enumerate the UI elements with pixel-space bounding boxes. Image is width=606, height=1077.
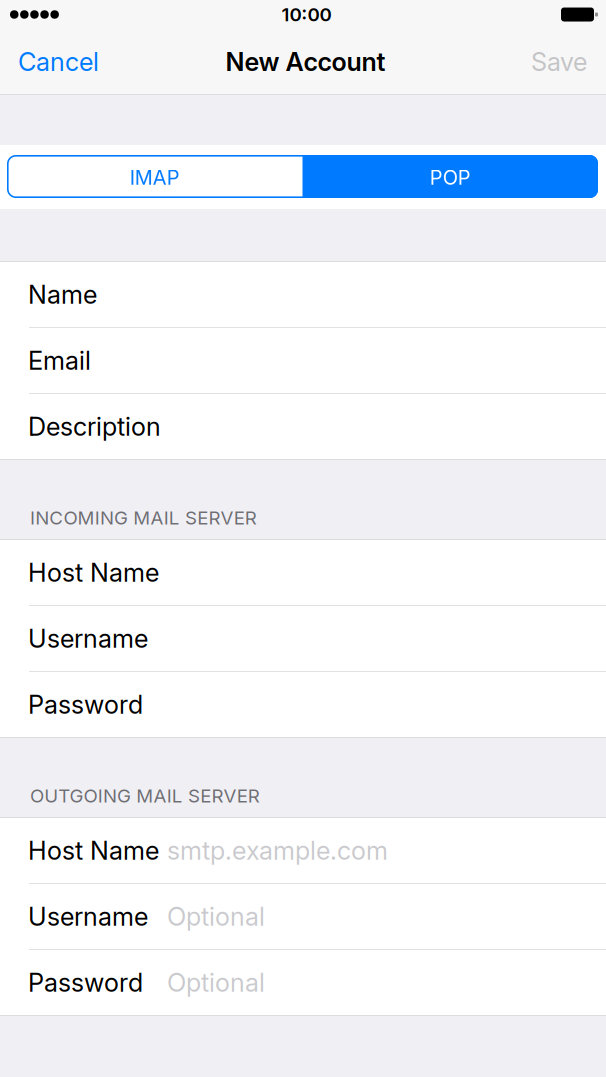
staticText: Email <box>28 345 91 376</box>
staticText: New Account <box>225 46 385 77</box>
button[interactable]: Password <box>0 950 606 1015</box>
staticText: Optional <box>167 901 265 932</box>
staticText: Host Name <box>28 835 159 866</box>
button[interactable]: Name <box>0 262 606 327</box>
staticText: OUTGOING MAIL SERVER <box>30 784 260 807</box>
staticText: Name <box>28 279 97 310</box>
staticText: Username <box>28 623 148 654</box>
staticText: IMAP <box>130 165 180 190</box>
staticText: POP <box>430 165 471 190</box>
button[interactable]: Host Name <box>0 818 606 883</box>
staticText: 10:00 <box>281 3 331 26</box>
button[interactable]: POP <box>302 155 598 198</box>
staticText: smtp.example.com <box>167 835 388 866</box>
button[interactable]: Username <box>0 884 606 949</box>
staticText: Save <box>531 46 587 77</box>
staticText: Host Name <box>28 557 159 588</box>
button[interactable]: Password <box>0 672 606 737</box>
staticText: Password <box>28 967 143 998</box>
button[interactable]: Username <box>0 606 606 671</box>
button[interactable]: Description <box>0 394 606 459</box>
staticText: Cancel <box>18 46 99 77</box>
button[interactable]: Host Name <box>0 540 606 605</box>
staticText: INCOMING MAIL SERVER <box>30 506 257 529</box>
staticText: Optional <box>167 967 265 998</box>
button[interactable]: Cancel <box>0 40 132 94</box>
button[interactable]: IMAP <box>7 155 302 198</box>
button[interactable]: Email <box>0 328 606 393</box>
staticText: Username <box>28 901 148 932</box>
staticText: Description <box>28 411 161 442</box>
button[interactable]: Save <box>496 40 606 94</box>
staticText: Password <box>28 689 143 720</box>
